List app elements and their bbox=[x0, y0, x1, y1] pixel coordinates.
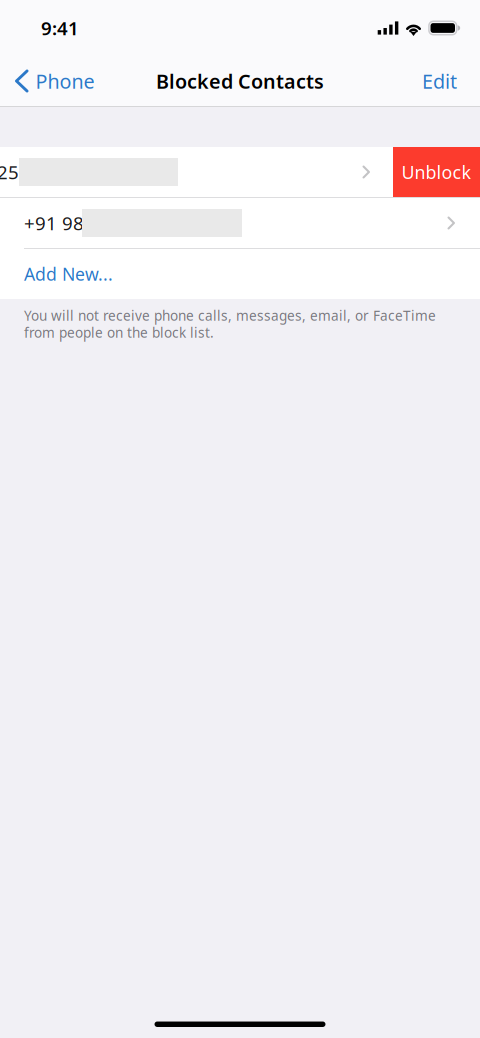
staticText: 9:41 bbox=[41, 16, 79, 40]
button[interactable]: +91 9825 bbox=[0, 147, 480, 197]
staticText: You will not receive phone calls, messag… bbox=[24, 307, 436, 341]
staticText: +91 9825 bbox=[0, 160, 19, 184]
button[interactable]: Edit bbox=[406, 56, 480, 106]
staticText: Add New... bbox=[24, 262, 113, 286]
staticText: Unblock bbox=[401, 160, 471, 184]
staticText: Blocked Contacts bbox=[156, 68, 324, 94]
staticText: +91 98 bbox=[24, 211, 84, 235]
button[interactable]: +91 98 bbox=[0, 198, 480, 248]
staticText: Edit bbox=[422, 68, 457, 94]
staticText: Phone bbox=[35, 68, 94, 94]
button[interactable]: Add New... bbox=[0, 249, 480, 299]
button[interactable]: Phone bbox=[0, 56, 104, 106]
button[interactable]: Unblock bbox=[393, 147, 480, 197]
